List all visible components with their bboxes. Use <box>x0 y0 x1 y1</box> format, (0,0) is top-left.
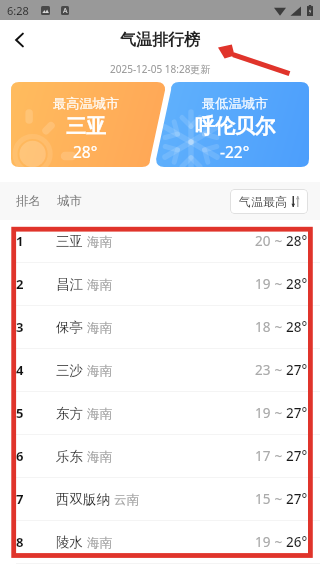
staticText: 三亚 <box>56 233 83 250</box>
staticText: ~ <box>271 318 286 336</box>
staticText: 西双版纳 <box>56 491 110 508</box>
staticText: 海南 <box>87 535 112 551</box>
staticText: 28° <box>286 275 308 293</box>
button[interactable]: 8 <box>0 521 320 563</box>
button[interactable]: 1 <box>0 220 320 262</box>
staticText: 27° <box>286 447 308 465</box>
staticText: A <box>63 6 68 15</box>
button[interactable]: Back <box>0 20 40 60</box>
button[interactable]: 3 <box>0 306 320 348</box>
staticText: 海南 <box>87 449 112 465</box>
staticText: 云南 <box>114 492 139 508</box>
staticText: 昌江 <box>56 276 83 293</box>
staticText: 乐东 <box>56 448 83 465</box>
staticText: 城市 <box>57 193 82 209</box>
staticText: ~ <box>271 232 286 250</box>
staticText: 保亭 <box>56 319 83 336</box>
staticText: 最低温城市 <box>202 95 268 112</box>
staticText: ~ <box>271 404 286 422</box>
staticText: 3 <box>16 318 24 336</box>
button[interactable]: 4 <box>0 349 320 391</box>
staticText: 呼伦贝尔 <box>195 114 275 139</box>
staticText: 海南 <box>87 320 112 336</box>
staticText: 19 <box>255 533 271 551</box>
staticText: 1 <box>16 232 24 250</box>
button[interactable]: 7 <box>0 478 320 520</box>
button[interactable]: 2 <box>0 263 320 305</box>
staticText: ~ <box>271 490 286 508</box>
staticText: 28° <box>286 318 308 336</box>
button[interactable]: 气温最高 <box>230 189 308 214</box>
staticText: 27° <box>286 361 308 379</box>
staticText: 8 <box>16 533 24 551</box>
staticText: 海南 <box>87 406 112 422</box>
button[interactable] <box>11 82 309 167</box>
staticText: 27° <box>286 404 308 422</box>
button[interactable] <box>11 82 309 167</box>
staticText: 海南 <box>87 234 112 250</box>
staticText: 东方 <box>56 405 83 422</box>
staticText: 海南 <box>87 363 112 379</box>
staticText: 27° <box>286 490 308 508</box>
staticText: 15 <box>255 490 271 508</box>
staticText: 28° <box>73 141 98 162</box>
staticText: 2 <box>16 275 24 293</box>
staticText: 2025-12-05 18:28更新 <box>110 62 211 76</box>
staticText: 海南 <box>87 277 112 293</box>
staticText: 28° <box>286 232 308 250</box>
staticText: ~ <box>271 533 286 551</box>
staticText: -22° <box>220 141 250 162</box>
staticText: 7 <box>16 490 24 508</box>
staticText: 气温排行榜 <box>120 30 200 50</box>
button[interactable]: 5 <box>0 392 320 434</box>
staticText: 23 <box>255 361 271 379</box>
staticText: 6:28 <box>7 3 29 18</box>
staticText: 17 <box>255 447 271 465</box>
staticText: 4 <box>16 361 24 379</box>
staticText: 5 <box>16 404 24 422</box>
staticText: ~ <box>271 447 286 465</box>
staticText: ~ <box>271 361 286 379</box>
staticText: 19 <box>255 275 271 293</box>
staticText: 19 <box>255 404 271 422</box>
staticText: 最高温城市 <box>53 95 119 112</box>
staticText: 26° <box>286 533 308 551</box>
staticText: 18 <box>255 318 271 336</box>
staticText: 陵水 <box>56 534 83 551</box>
staticText: 20 <box>255 232 271 250</box>
staticText: 三亚 <box>66 114 106 139</box>
staticText: ~ <box>271 275 286 293</box>
button[interactable]: 6 <box>0 435 320 477</box>
staticText: 6 <box>16 447 24 465</box>
staticText: 气温最高 <box>239 194 287 209</box>
staticText: 排名 <box>16 193 41 209</box>
staticText: 三沙 <box>56 362 83 379</box>
